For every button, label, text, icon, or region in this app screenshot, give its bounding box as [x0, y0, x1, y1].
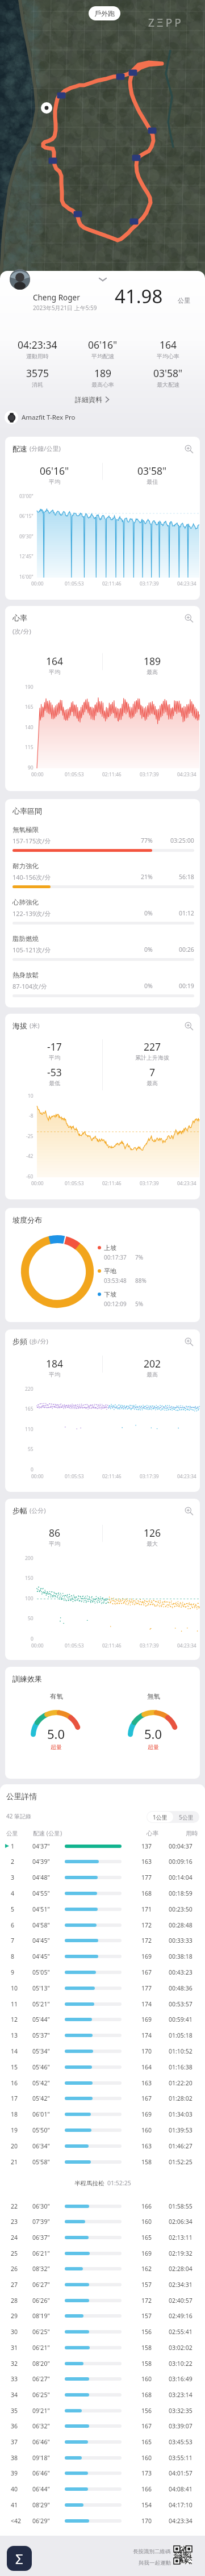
- staticText: 00:48:36: [169, 1984, 193, 1992]
- button[interactable]: [0, 2077, 205, 2090]
- staticText: 160: [141, 2454, 152, 2462]
- staticText: 27: [11, 2281, 18, 2289]
- staticText: 03:10:22: [169, 2360, 193, 2368]
- staticText: 36: [11, 2422, 18, 2430]
- staticText: 脂肪燃燒: [12, 935, 39, 943]
- button[interactable]: [0, 2452, 205, 2465]
- button[interactable]: 詳細資料: [73, 393, 111, 405]
- staticText: 超量: [148, 1743, 159, 1751]
- button[interactable]: [0, 1887, 205, 1901]
- staticText: 01:12: [179, 909, 194, 917]
- staticText: 08'20": [32, 2360, 50, 2368]
- staticText: 最大: [147, 1540, 158, 1548]
- staticText: 公里: [178, 296, 190, 304]
- button[interactable]: [0, 1950, 205, 1964]
- button[interactable]: [0, 1982, 205, 1996]
- staticText: 00:00: [31, 1642, 44, 1649]
- button[interactable]: [0, 2108, 205, 2122]
- staticText: 06'37": [32, 2234, 50, 2242]
- staticText: 169: [141, 2015, 152, 2023]
- button[interactable]: [0, 2483, 205, 2496]
- button[interactable]: [0, 2404, 205, 2418]
- button[interactable]: [0, 2231, 205, 2245]
- staticText: (公分): [30, 1506, 46, 1515]
- button[interactable]: Zoom chart: [183, 1336, 194, 1347]
- button[interactable]: Zoom chart: [183, 1020, 194, 1031]
- button[interactable]: [0, 2092, 205, 2106]
- staticText: 心率區間: [12, 806, 42, 816]
- staticText: 157: [141, 2312, 152, 2320]
- button[interactable]: [0, 2013, 205, 2027]
- button[interactable]: [0, 2499, 205, 2512]
- staticText: 平均: [49, 478, 60, 486]
- button[interactable]: [0, 1840, 205, 1854]
- button[interactable]: [0, 2326, 205, 2339]
- staticText: 172: [141, 1937, 152, 1944]
- button[interactable]: [0, 2389, 205, 2402]
- staticText: 00:33:33: [169, 1937, 193, 1944]
- button[interactable]: Zepp: [7, 2546, 32, 2571]
- staticText: 01:10:52: [169, 2047, 193, 2055]
- staticText: 長按識別二維碼: [133, 2548, 171, 2555]
- button[interactable]: [0, 2341, 205, 2355]
- button[interactable]: [0, 2247, 205, 2261]
- button[interactable]: Zoom chart: [183, 612, 194, 624]
- button[interactable]: [0, 2029, 205, 2043]
- button[interactable]: [0, 1903, 205, 1917]
- button[interactable]: [0, 1998, 205, 2012]
- staticText: 160: [141, 2375, 152, 2383]
- staticText: 03:39:07: [169, 2422, 193, 2430]
- staticText: 心率: [147, 1830, 158, 1837]
- staticText: 02:40:57: [169, 2297, 193, 2305]
- button[interactable]: [0, 1855, 205, 1869]
- button[interactable]: [0, 2294, 205, 2308]
- staticText: 1公里: [153, 1813, 168, 1821]
- staticText: 03:16:49: [169, 2375, 193, 2383]
- staticText: 步頻: [12, 1337, 27, 1346]
- button[interactable]: [0, 1934, 205, 1948]
- staticText: 167: [141, 1968, 152, 1976]
- staticText: 164: [141, 2063, 152, 2071]
- button[interactable]: [0, 2310, 205, 2323]
- button[interactable]: [0, 2156, 205, 2169]
- button[interactable]: [0, 2045, 205, 2059]
- button[interactable]: 戶外跑: [89, 6, 120, 20]
- staticText: 0%: [144, 946, 153, 954]
- staticText: 07'39": [32, 2218, 50, 2226]
- staticText: 25: [11, 2249, 18, 2257]
- staticText: 06'27": [32, 2281, 50, 2289]
- button[interactable]: [0, 2515, 205, 2528]
- staticText: 05'46": [32, 2063, 50, 2071]
- staticText: 164: [46, 654, 64, 668]
- button[interactable]: [0, 1871, 205, 1885]
- button[interactable]: [0, 2420, 205, 2433]
- staticText: (米): [30, 1021, 40, 1030]
- staticText: 26: [11, 2265, 18, 2273]
- button[interactable]: [0, 2200, 205, 2214]
- button[interactable]: [0, 1919, 205, 1933]
- button[interactable]: 1公里: [147, 1812, 173, 1822]
- button[interactable]: [0, 2215, 205, 2229]
- staticText: 157: [141, 2281, 152, 2289]
- staticText: 5.0: [47, 1725, 65, 1742]
- button[interactable]: [0, 2467, 205, 2481]
- staticText: 最低: [49, 1080, 60, 1087]
- button[interactable]: [0, 2061, 205, 2075]
- button[interactable]: 5公里: [173, 1812, 199, 1822]
- staticText: 01:28:02: [169, 2094, 193, 2102]
- staticText: 最高: [147, 1371, 158, 1378]
- button[interactable]: [0, 2278, 205, 2292]
- button[interactable]: [0, 2357, 205, 2371]
- staticText: 115: [25, 744, 34, 751]
- button[interactable]: Zoom chart: [183, 1505, 194, 1516]
- button[interactable]: [0, 2436, 205, 2449]
- button[interactable]: [0, 2263, 205, 2276]
- button[interactable]: [0, 2373, 205, 2386]
- button[interactable]: Zoom chart: [183, 443, 194, 454]
- staticText: 0: [31, 1466, 34, 1473]
- button[interactable]: [0, 2140, 205, 2153]
- button[interactable]: [0, 1966, 205, 1980]
- button[interactable]: [0, 2124, 205, 2138]
- staticText: 06'16": [40, 464, 69, 478]
- staticText: 04:23:34: [177, 1473, 196, 1480]
